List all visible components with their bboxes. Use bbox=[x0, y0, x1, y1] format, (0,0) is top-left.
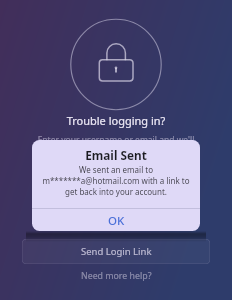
staticText: Send Login Link bbox=[81, 245, 152, 258]
staticText: We sent an email to m*******a@hotmail.co… bbox=[36, 164, 196, 197]
button[interactable]: Need more help? bbox=[0, 268, 232, 284]
staticText: Trouble logging in? bbox=[0, 113, 232, 128]
button[interactable]: Send Login Link bbox=[22, 239, 210, 264]
staticText: Need more help? bbox=[81, 270, 152, 282]
staticText: Enter your username or email and we'll s… bbox=[33, 134, 199, 167]
button[interactable]: OK bbox=[32, 209, 200, 231]
staticText: OK bbox=[108, 213, 125, 229]
staticText: Email Sent bbox=[32, 147, 200, 163]
